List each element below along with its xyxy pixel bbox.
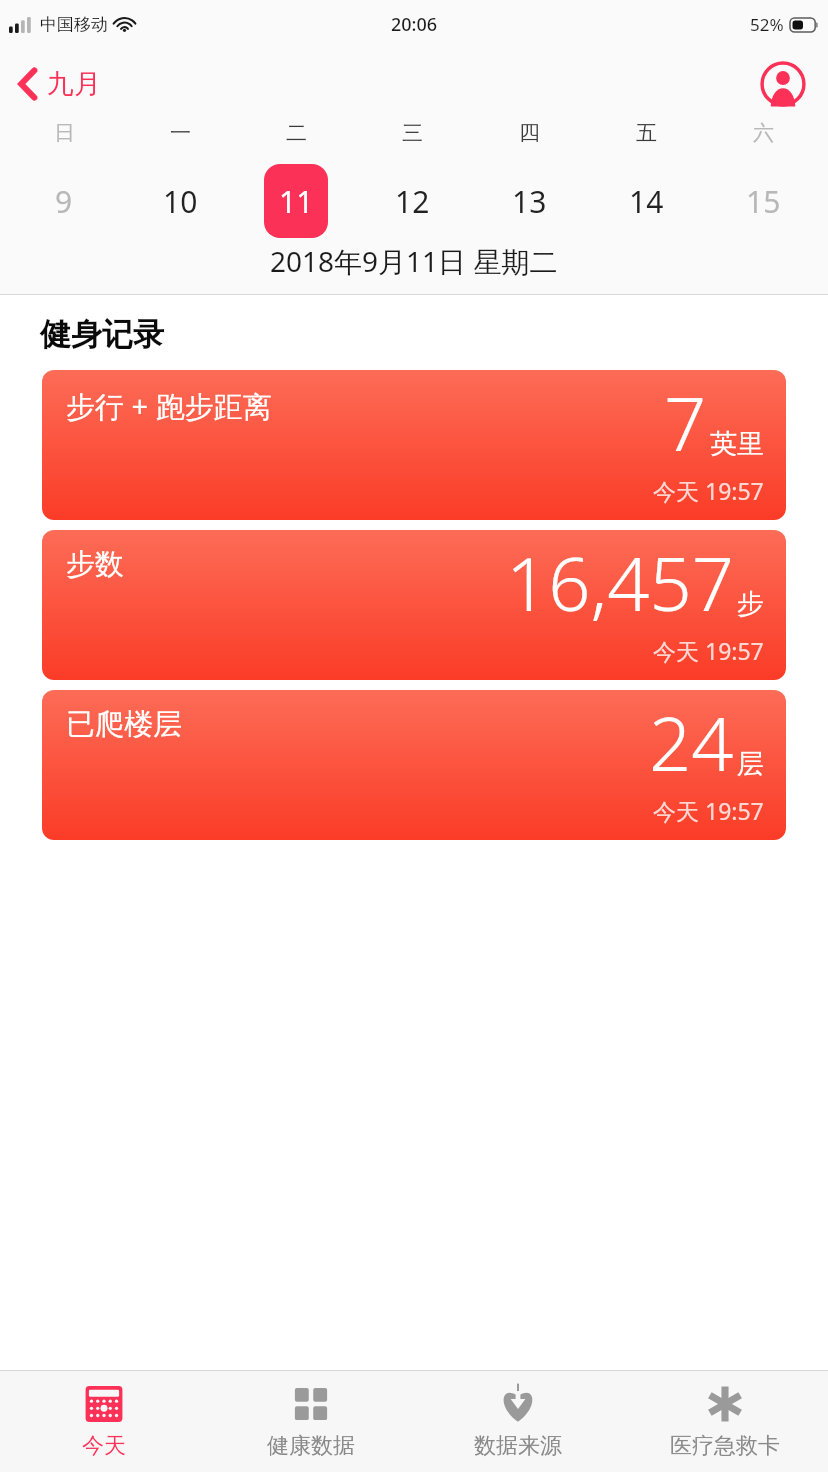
button[interactable]: 已爬楼层 bbox=[42, 690, 786, 840]
staticText: 10 bbox=[163, 181, 198, 222]
button[interactable]: 数据来源 bbox=[414, 1371, 621, 1472]
button[interactable]: 15 bbox=[705, 164, 822, 238]
staticText: 五 bbox=[636, 120, 657, 146]
staticText: 数据来源 bbox=[474, 1432, 562, 1460]
staticText: 健康数据 bbox=[267, 1432, 355, 1460]
staticText: 今天 19:57 bbox=[653, 795, 764, 826]
button[interactable]: 九月 bbox=[0, 61, 117, 107]
staticText: 医疗急救卡 bbox=[670, 1432, 780, 1460]
staticText: 今天 19:57 bbox=[653, 475, 764, 506]
button[interactable]: 步行 + 跑步距离 bbox=[42, 370, 786, 520]
staticText: 52% bbox=[750, 13, 784, 36]
staticText: 已爬楼层 bbox=[66, 706, 182, 743]
staticText: 健身记录 bbox=[40, 315, 164, 354]
button[interactable]: 10 bbox=[122, 164, 238, 238]
staticText: 一 bbox=[170, 120, 191, 146]
staticText: 16,457 bbox=[506, 532, 734, 633]
button[interactable]: 医疗急救卡 bbox=[621, 1371, 828, 1472]
staticText: 2018年9月11日 星期二 bbox=[270, 242, 558, 280]
staticText: 20:06 bbox=[391, 12, 438, 37]
staticText: 14 bbox=[629, 181, 664, 222]
button[interactable]: 健康数据 bbox=[207, 1371, 414, 1472]
staticText: 三 bbox=[402, 120, 423, 146]
staticText: 9 bbox=[55, 181, 73, 222]
staticText: 二 bbox=[286, 120, 307, 146]
staticText: 7 bbox=[664, 372, 707, 473]
button[interactable]: 步数 bbox=[42, 530, 786, 680]
button[interactable]: 13 bbox=[471, 164, 588, 238]
button[interactable]: 12 bbox=[354, 164, 471, 238]
button[interactable]: 今天 bbox=[0, 1371, 207, 1472]
staticText: 24 bbox=[649, 692, 734, 793]
staticText: 今天 19:57 bbox=[653, 635, 764, 666]
staticText: 步 bbox=[737, 587, 764, 621]
staticText: 六 bbox=[753, 120, 774, 146]
staticText: 步行 + 跑步距离 bbox=[66, 386, 272, 426]
button[interactable]: 11 bbox=[238, 164, 354, 238]
staticText: 13 bbox=[512, 181, 547, 222]
staticText: 步数 bbox=[66, 546, 124, 583]
button[interactable]: 14 bbox=[588, 164, 705, 238]
staticText: 12 bbox=[395, 181, 430, 222]
staticText: 11 bbox=[279, 181, 314, 222]
staticText: 层 bbox=[737, 747, 764, 781]
button[interactable]: 个人资料 bbox=[758, 59, 808, 109]
staticText: 今天 bbox=[82, 1432, 126, 1460]
staticText: 九月 bbox=[47, 67, 101, 101]
staticText: 日 bbox=[54, 120, 75, 146]
button[interactable]: 9 bbox=[6, 164, 122, 238]
staticText: 中国移动 bbox=[40, 14, 108, 35]
staticText: 15 bbox=[746, 181, 781, 222]
staticText: 英里 bbox=[710, 427, 764, 461]
staticText: 四 bbox=[519, 120, 540, 146]
